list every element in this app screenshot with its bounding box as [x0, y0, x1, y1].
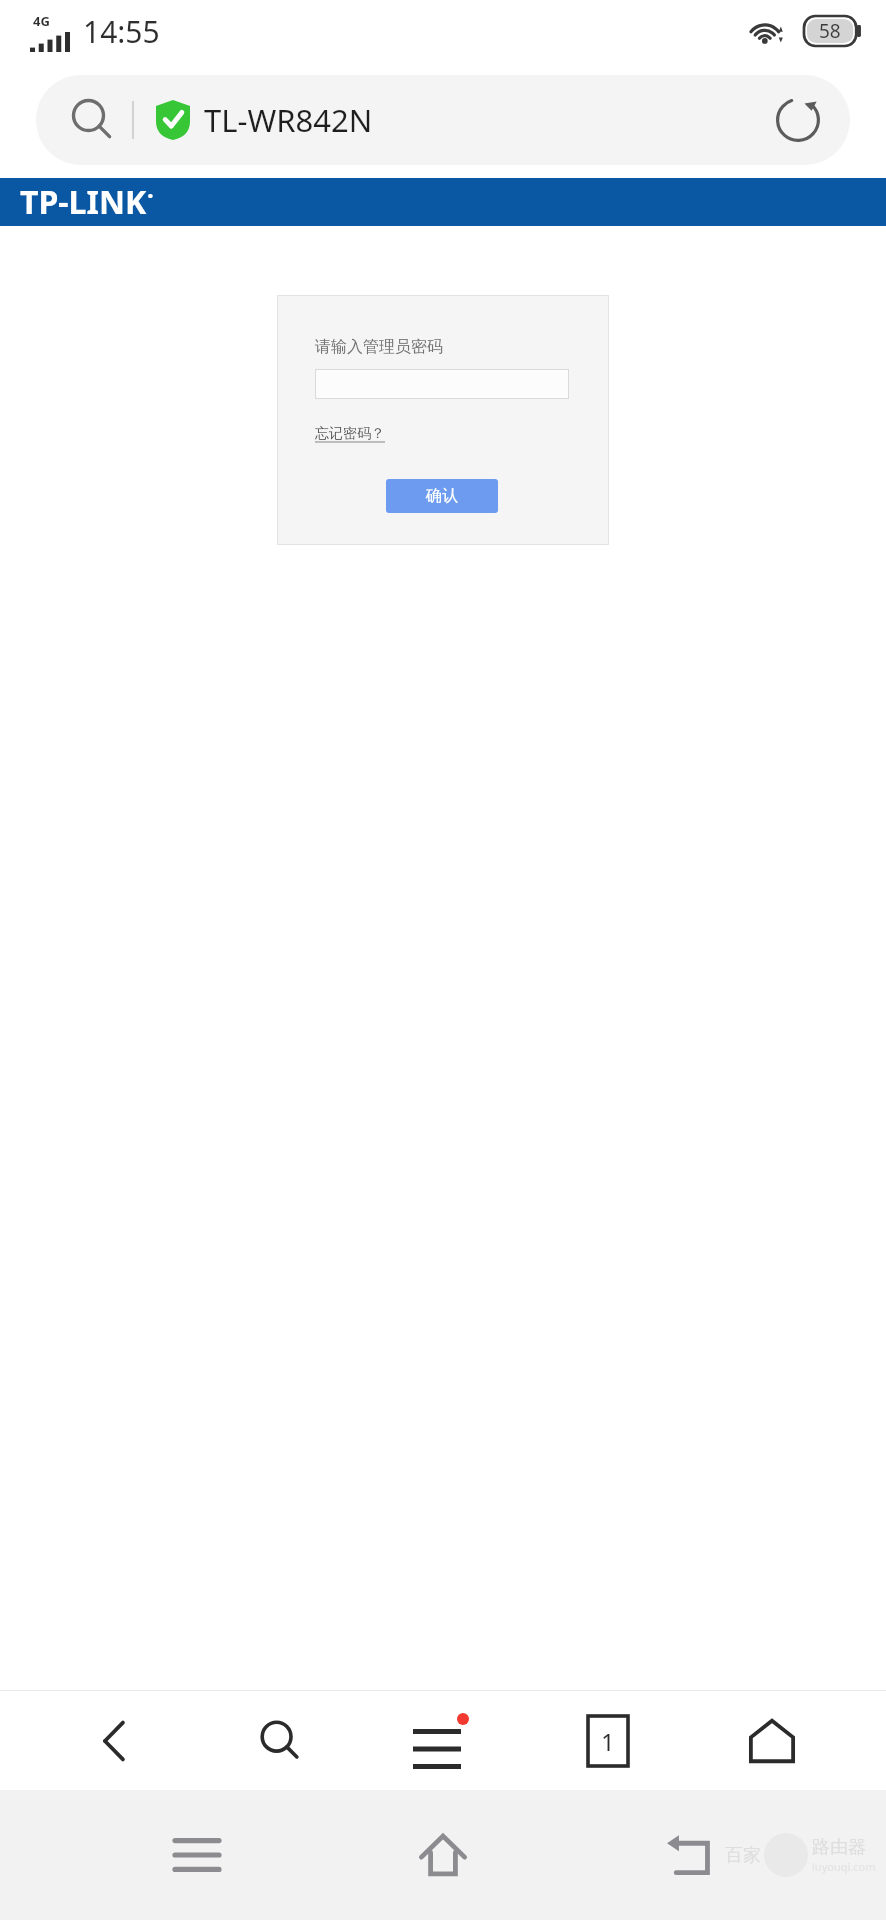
staticText: TP-LINK [20, 180, 147, 224]
button[interactable]: Tabs [558, 1691, 657, 1790]
staticText: 请输入管理员密码 [315, 337, 443, 357]
button[interactable] [315, 369, 569, 399]
staticText: TL-WR842N [204, 99, 373, 141]
button[interactable]: Home [393, 1805, 493, 1905]
button[interactable]: Recent apps [147, 1805, 247, 1905]
button[interactable]: Refresh [768, 90, 828, 150]
staticText: 百家 [725, 1844, 761, 1867]
button[interactable]: TL-WR842N [36, 75, 850, 165]
button[interactable]: Menu [393, 1691, 492, 1790]
button[interactable]: Search [229, 1691, 328, 1790]
staticText: luyouqi.com [812, 1859, 876, 1874]
staticText: 14:55 [83, 11, 160, 52]
staticText: 58 [819, 18, 841, 44]
button[interactable]: 忘记密码？ [315, 425, 385, 443]
button[interactable]: 确认 [386, 479, 498, 513]
staticText: 1 [601, 1725, 615, 1758]
staticText: 路由器 [812, 1836, 866, 1859]
button[interactable]: Back [65, 1691, 164, 1790]
button[interactable]: Back [640, 1805, 740, 1905]
staticText: · [147, 178, 154, 211]
button[interactable]: Home [722, 1691, 821, 1790]
staticText: 4G [33, 12, 50, 30]
staticText: 确认 [426, 486, 458, 506]
